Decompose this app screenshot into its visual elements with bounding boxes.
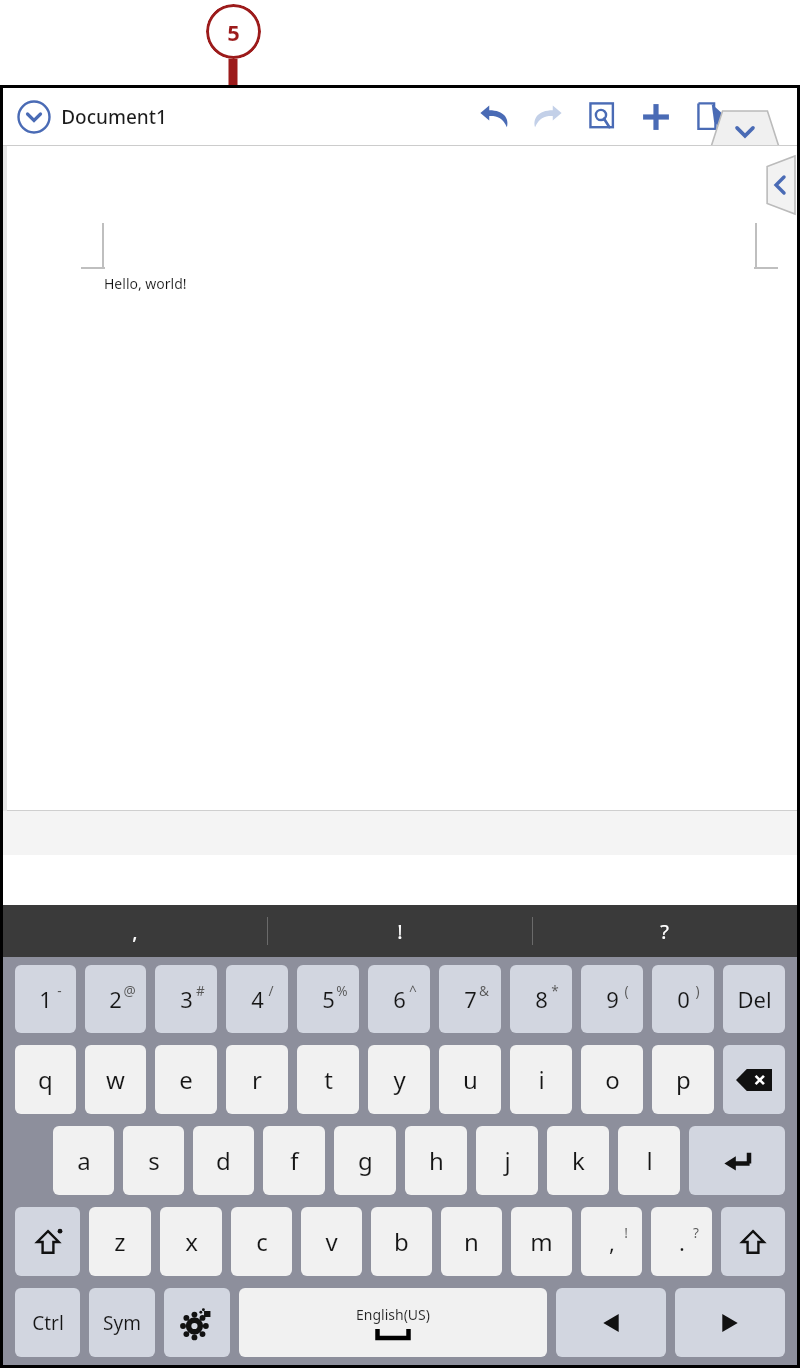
staticText: y — [393, 1063, 406, 1096]
staticText: r — [252, 1063, 262, 1096]
staticText: o — [605, 1063, 620, 1096]
button[interactable]: e — [155, 1045, 217, 1114]
button[interactable]: Collapse toolbar — [711, 111, 779, 147]
staticText: ? — [693, 1223, 699, 1242]
button[interactable]: 8 — [510, 965, 572, 1033]
button[interactable]: Del — [723, 965, 785, 1033]
staticText: ( — [624, 981, 629, 1000]
button[interactable]: b — [371, 1207, 432, 1276]
button[interactable]: j — [476, 1126, 538, 1195]
staticText: @ — [123, 981, 136, 1000]
staticText: x — [185, 1225, 198, 1258]
button[interactable]: y — [368, 1045, 430, 1114]
button[interactable]: f — [263, 1126, 325, 1195]
button[interactable]: shiftdot — [15, 1207, 80, 1276]
staticText: g — [358, 1144, 373, 1177]
button[interactable]: l — [618, 1126, 680, 1195]
button[interactable]: Insert — [629, 90, 683, 144]
button[interactable]: r — [226, 1045, 288, 1114]
staticText: e — [179, 1063, 193, 1096]
button[interactable]: i — [510, 1045, 572, 1114]
staticText: ? — [660, 918, 669, 945]
staticText: p — [676, 1063, 691, 1096]
button[interactable]: Open panel — [761, 156, 795, 214]
staticText: v — [325, 1225, 338, 1258]
button[interactable]: bksp — [723, 1045, 785, 1114]
button[interactable]: , — [3, 905, 267, 957]
staticText: Hello, world! — [104, 274, 187, 293]
button[interactable]: v — [301, 1207, 362, 1276]
staticText: 3 — [180, 984, 193, 1014]
button[interactable]: 0 — [652, 965, 714, 1033]
button[interactable]: space — [239, 1288, 547, 1357]
button[interactable]: s — [123, 1126, 184, 1195]
staticText: l — [646, 1144, 653, 1177]
button[interactable]: , — [581, 1207, 642, 1276]
button[interactable]: 1 — [15, 965, 76, 1033]
staticText: , — [132, 918, 138, 945]
button[interactable]: c — [231, 1207, 292, 1276]
staticText: 8 — [535, 984, 548, 1014]
staticText: # — [196, 981, 205, 1000]
button[interactable]: w — [85, 1045, 146, 1114]
button[interactable]: k — [547, 1126, 609, 1195]
button[interactable]: g — [334, 1126, 396, 1195]
button[interactable]: n — [441, 1207, 502, 1276]
staticText: c — [256, 1225, 268, 1258]
staticText: a — [77, 1144, 91, 1177]
staticText: b — [394, 1225, 409, 1258]
button[interactable]: 3 — [155, 965, 217, 1033]
button[interactable]: 5 — [297, 965, 359, 1033]
staticText: k — [572, 1144, 585, 1177]
button[interactable]: p — [652, 1045, 714, 1114]
staticText: % — [336, 981, 348, 1000]
staticText: - — [57, 981, 62, 1000]
button[interactable]: ? — [532, 905, 797, 957]
staticText: Del — [737, 984, 772, 1014]
button[interactable]: Edit — [683, 90, 737, 144]
staticText: m — [530, 1225, 553, 1258]
button[interactable]: Find — [575, 90, 629, 144]
button[interactable]: . — [651, 1207, 712, 1276]
button[interactable]: o — [581, 1045, 643, 1114]
staticText: ! — [624, 1223, 628, 1242]
button[interactable]: t — [297, 1045, 359, 1114]
button[interactable]: d — [193, 1126, 254, 1195]
button[interactable]: shift — [721, 1207, 785, 1276]
button[interactable]: Document1 — [17, 100, 175, 134]
staticText: Sym — [103, 1310, 141, 1336]
staticText: & — [479, 981, 489, 1000]
button[interactable]: u — [439, 1045, 501, 1114]
button[interactable]: x — [160, 1207, 222, 1276]
staticText: 5 — [227, 17, 240, 47]
button[interactable]: right — [675, 1288, 785, 1357]
staticText: ) — [695, 981, 700, 1000]
staticText: q — [38, 1063, 53, 1096]
button[interactable]: 4 — [226, 965, 288, 1033]
staticText: 9 — [606, 984, 619, 1014]
staticText: , — [609, 1227, 615, 1257]
staticText: ^ — [409, 981, 417, 1000]
button[interactable]: left — [556, 1288, 666, 1357]
button[interactable]: 6 — [368, 965, 430, 1033]
staticText: z — [114, 1225, 126, 1258]
button[interactable]: Ctrl — [15, 1288, 80, 1357]
button[interactable]: 7 — [439, 965, 501, 1033]
button[interactable]: a — [53, 1126, 114, 1195]
button[interactable]: q — [15, 1045, 76, 1114]
staticText: u — [463, 1063, 478, 1096]
button[interactable]: z — [89, 1207, 151, 1276]
staticText: 1 — [39, 984, 52, 1014]
button[interactable]: 9 — [581, 965, 643, 1033]
button[interactable]: h — [405, 1126, 467, 1195]
button[interactable]: enter — [689, 1126, 785, 1195]
button[interactable]: ! — [267, 905, 532, 957]
staticText: 6 — [393, 984, 406, 1014]
staticText: 7 — [464, 984, 477, 1014]
button[interactable]: Sym — [89, 1288, 155, 1357]
button[interactable]: Undo — [467, 90, 521, 144]
button[interactable]: Redo — [521, 90, 575, 144]
button[interactable]: gear — [164, 1288, 230, 1357]
button[interactable]: m — [511, 1207, 572, 1276]
button[interactable]: 2 — [85, 965, 146, 1033]
